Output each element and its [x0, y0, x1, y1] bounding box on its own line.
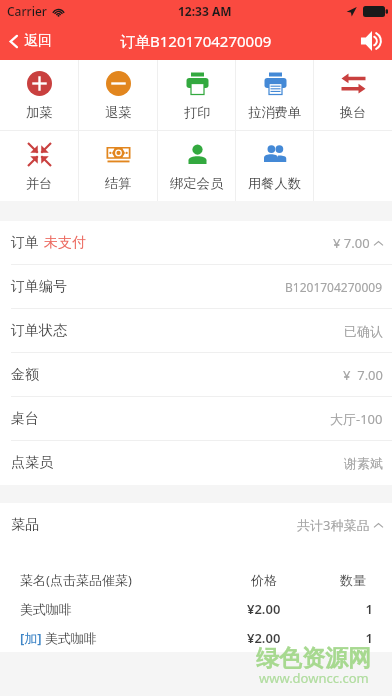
staticText: 换台 [340, 104, 367, 121]
staticText: ¥2.00 [247, 600, 342, 618]
staticText: 订单B1201704270009 [120, 31, 272, 51]
button[interactable]: 结算 [79, 131, 158, 201]
button[interactable]: 桌台 [0, 397, 392, 441]
staticText: 并台 [26, 175, 53, 192]
staticText: 数量 [337, 572, 366, 588]
button[interactable]: 拉消费单 [236, 60, 314, 130]
button[interactable]: 美式咖啡 [0, 594, 392, 623]
button[interactable]: 返回 [0, 22, 60, 60]
staticText: 退菜 [105, 104, 132, 121]
button[interactable]: 点菜员 [0, 441, 392, 485]
staticText: 菜品 [11, 516, 39, 534]
button[interactable]: 打印 [158, 60, 236, 130]
staticText: 订单 [11, 234, 39, 252]
staticText: www.downcc.com [259, 669, 369, 687]
staticText: 拉消费单 [248, 104, 302, 121]
staticText: 返回 [24, 32, 52, 50]
button[interactable]: 订单编号 [0, 265, 392, 309]
staticText: 价格 [251, 572, 346, 588]
button[interactable]: 订单 [0, 221, 392, 265]
button[interactable]: 金额 [0, 353, 392, 397]
button[interactable]: [加] [0, 623, 392, 652]
button[interactable]: 菜名(点击菜品催菜) [0, 565, 392, 594]
staticText: 大厅-100 [330, 410, 383, 428]
button[interactable]: 订单状态 [0, 309, 392, 353]
staticText: ¥ 7.00 [333, 234, 370, 252]
staticText: 绿色资源网 [256, 644, 371, 673]
staticText: 点菜员 [11, 454, 53, 472]
staticText: 用餐人数 [248, 175, 302, 192]
button[interactable]: 并台 [0, 131, 79, 201]
staticText: 加菜 [26, 104, 53, 121]
staticText: ¥2.00 [247, 629, 342, 647]
button[interactable]: 加菜 [0, 60, 79, 130]
button[interactable]: 菜品 [0, 503, 392, 547]
button[interactable]: 绑定会员 [158, 131, 236, 201]
staticText: 金额 [11, 366, 39, 384]
staticText: 谢素斌 [344, 455, 383, 471]
staticText: 美式咖啡 [20, 601, 72, 617]
staticText: ¥ 7.00 [343, 366, 383, 384]
staticText: 菜名(点击菜品催菜) [20, 571, 132, 589]
staticText: 共计3种菜品 [297, 516, 370, 534]
button[interactable]: Sound [352, 22, 392, 60]
staticText: 已确认 [344, 323, 383, 339]
staticText: 桌台 [11, 410, 39, 428]
staticText: 1 [344, 600, 373, 618]
button[interactable]: 换台 [314, 60, 392, 130]
staticText: 未支付 [44, 234, 86, 252]
staticText: 绑定会员 [170, 175, 224, 192]
staticText: 结算 [105, 175, 132, 192]
staticText: 美式咖啡 [45, 630, 97, 646]
staticText: 1 [344, 629, 373, 647]
button[interactable]: 退菜 [79, 60, 158, 130]
staticText: 订单状态 [11, 322, 67, 340]
staticText: 订单编号 [11, 278, 67, 296]
staticText: B1201704270009 [285, 279, 383, 295]
staticText: [加] [20, 629, 45, 647]
staticText: 12:33 AM [178, 3, 232, 19]
staticText: 打印 [184, 104, 211, 121]
button[interactable]: 用餐人数 [236, 131, 314, 201]
staticText: Carrier [7, 3, 47, 19]
